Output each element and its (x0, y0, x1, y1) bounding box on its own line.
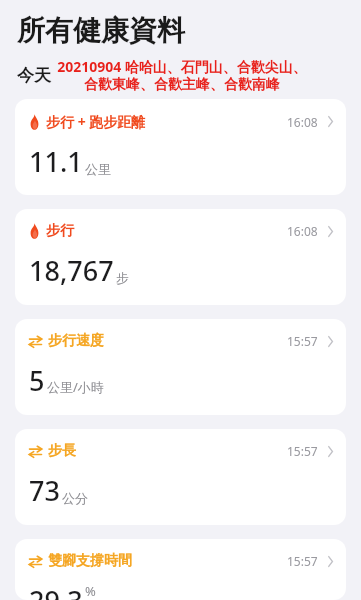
staticText: 步長 (48, 442, 76, 460)
staticText: 步行 + 跑步距離 (46, 112, 146, 131)
staticText: 20210904 哈哈山、石門山、合歡尖山、 合歡東峰、合歡主峰、合歡南峰 (57, 57, 307, 93)
staticText: 所有健康資料 (17, 13, 185, 48)
staticText: 15:57 (287, 333, 318, 349)
staticText: % (85, 582, 96, 597)
staticText: 11.1 (29, 143, 83, 180)
staticText: 15:57 (287, 443, 318, 459)
staticText: 雙腳支撐時間 (48, 552, 132, 570)
staticText: 公里/小時 (47, 378, 104, 396)
button[interactable]: 步行 + 跑步距離 (15, 99, 346, 195)
staticText: 今天 (17, 65, 51, 86)
staticText: 公里 (85, 161, 111, 177)
staticText: 公分 (62, 490, 88, 506)
staticText: 29.3 (29, 582, 83, 600)
staticText: 15:57 (287, 553, 318, 569)
staticText: 步行 (46, 222, 74, 240)
staticText: 18,767 (29, 252, 114, 289)
button[interactable]: 雙腳支撐時間 (15, 539, 346, 600)
staticText: 步 (116, 270, 129, 286)
staticText: 16:08 (287, 223, 318, 239)
staticText: 16:08 (287, 114, 318, 130)
staticText: 5 (29, 362, 45, 399)
staticText: 73 (29, 472, 60, 509)
button[interactable]: 步行 (15, 209, 346, 305)
staticText: 步行速度 (48, 332, 104, 350)
button[interactable]: 步行速度 (15, 319, 346, 415)
button[interactable]: 步長 (15, 429, 346, 525)
